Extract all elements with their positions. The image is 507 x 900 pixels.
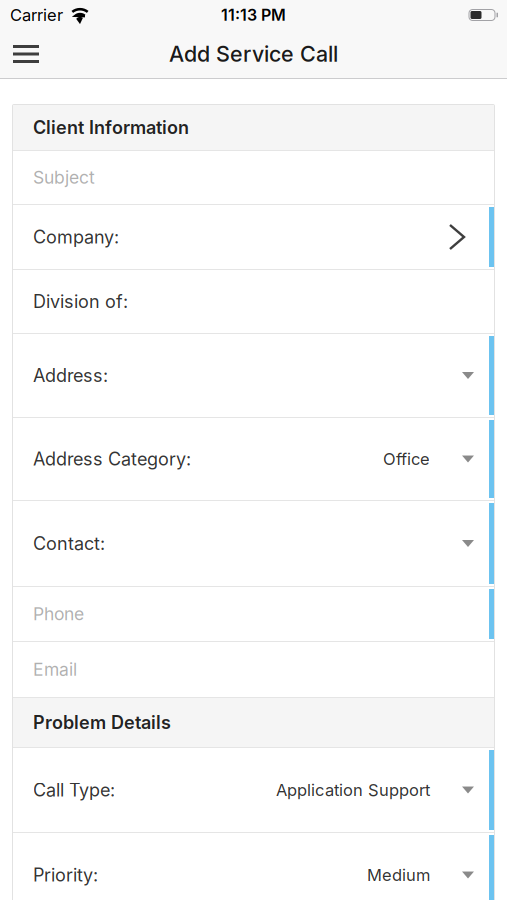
staticText: Contact: — [33, 533, 105, 554]
staticText: Address: — [33, 365, 108, 386]
staticText: Phone — [33, 603, 84, 625]
staticText: Office — [383, 449, 430, 469]
button[interactable] — [13, 45, 39, 63]
staticText: Address Category: — [33, 448, 191, 470]
button[interactable]: Subject — [13, 151, 494, 204]
staticText: Client Information — [33, 117, 189, 138]
button[interactable]: Email — [13, 642, 494, 697]
button[interactable]: Company: — [13, 205, 494, 269]
staticText: Subject — [33, 167, 95, 188]
button[interactable]: Contact: — [13, 501, 494, 586]
staticText: Add Service Call — [169, 41, 338, 67]
staticText: 11:13 PM — [221, 5, 286, 25]
staticText: Carrier — [10, 5, 63, 25]
button[interactable]: Phone — [13, 587, 494, 641]
staticText: Division of: — [33, 291, 128, 312]
button[interactable]: Address Category: — [13, 418, 494, 500]
staticText: Call Type: — [33, 779, 115, 801]
button[interactable]: Division of: — [13, 270, 494, 333]
staticText: Problem Details — [33, 712, 171, 733]
button[interactable]: Call Type: — [13, 748, 494, 832]
staticText: Priority: — [33, 864, 98, 886]
staticText: Company: — [33, 226, 119, 248]
staticText: Application Support — [276, 780, 430, 800]
button[interactable]: Address: — [13, 334, 494, 417]
button[interactable]: Priority: — [13, 833, 494, 900]
staticText: Email — [33, 659, 77, 680]
staticText: Medium — [367, 865, 430, 885]
